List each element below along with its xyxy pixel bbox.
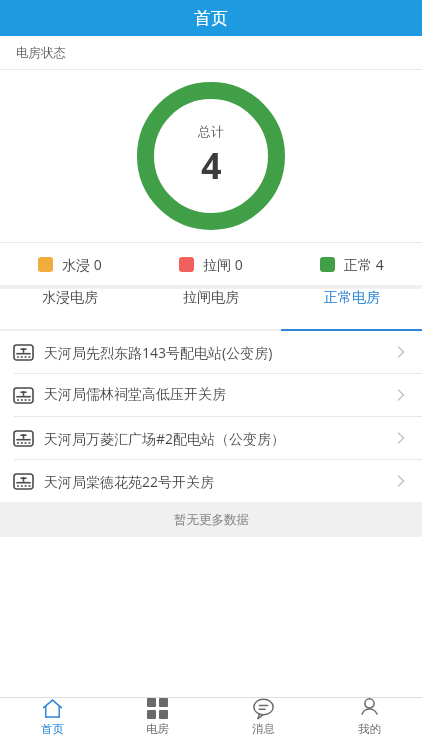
staticText: 水浸 0 [62,255,102,274]
staticText: 暂无更多数据 [174,512,249,528]
staticText: 首页 [41,722,64,736]
button[interactable]: 天河局万菱汇广场#2配电站（公变房） [0,417,422,459]
button[interactable]: 正常电房 [281,289,422,307]
staticText: 水浸电房 [42,289,98,307]
button[interactable]: 首页 [0,698,105,736]
button[interactable]: 拉闸电房 [140,289,281,307]
button[interactable]: 电房 [105,698,210,736]
staticText: 消息 [252,722,275,736]
staticText: 天河局儒林祠堂高低压开关房 [44,386,392,404]
staticText: 拉闸 0 [203,255,243,274]
button[interactable]: 正常 4 [281,255,422,274]
staticText: 正常电房 [324,289,380,307]
button[interactable]: 天河局先烈东路143号配电站(公变房) [0,331,422,373]
staticText: 天河局先烈东路143号配电站(公变房) [44,343,392,362]
staticText: 正常 4 [344,255,384,274]
button[interactable]: 水浸 0 [0,255,140,274]
staticText: 我的 [358,722,381,736]
staticText: 拉闸电房 [183,289,239,307]
staticText: 总计 [198,123,224,139]
button[interactable]: 消息 [210,698,316,736]
button[interactable]: 天河局儒林祠堂高低压开关房 [0,374,422,416]
button[interactable]: 天河局棠德花苑22号开关房 [0,460,422,502]
staticText: 电房 [146,722,169,736]
staticText: 首页 [194,8,228,29]
staticText: 4 [201,141,222,190]
button[interactable]: 拉闸 0 [140,255,281,274]
staticText: 天河局万菱汇广场#2配电站（公变房） [44,429,392,448]
button[interactable]: 我的 [316,698,422,736]
staticText: 电房状态 [16,45,66,61]
button[interactable]: 水浸电房 [0,289,140,307]
staticText: 天河局棠德花苑22号开关房 [44,472,392,491]
